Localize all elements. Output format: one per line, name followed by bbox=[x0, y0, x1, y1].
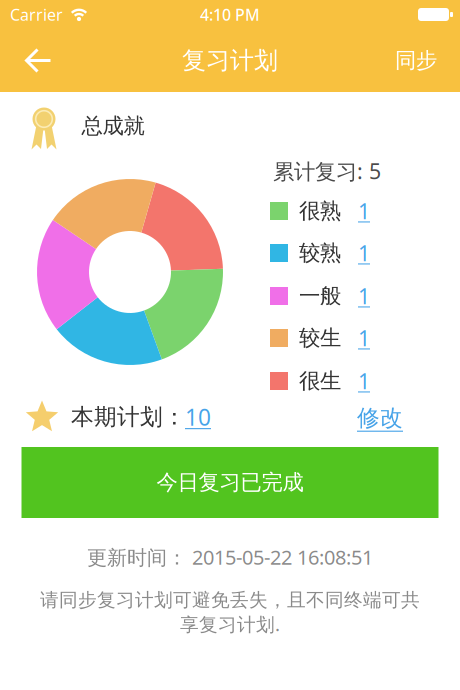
button[interactable]: Back bbox=[25, 45, 53, 75]
staticText: 很熟 bbox=[299, 198, 341, 224]
staticText: 享复习计划. bbox=[180, 612, 280, 636]
staticText: Carrier bbox=[10, 4, 63, 25]
staticText: 本期计划： bbox=[71, 403, 186, 431]
staticText: 4:10 PM bbox=[200, 4, 260, 25]
staticText: 较熟 bbox=[299, 240, 341, 266]
staticText: 10 bbox=[185, 402, 211, 432]
button[interactable]: 1 bbox=[354, 318, 374, 358]
staticText: 1 bbox=[358, 367, 370, 395]
button[interactable]: 1 bbox=[354, 276, 374, 316]
staticText: 1 bbox=[358, 324, 370, 352]
staticText: 修改 bbox=[357, 404, 403, 432]
button[interactable]: 同步 bbox=[395, 47, 437, 74]
button[interactable]: 10 bbox=[185, 397, 211, 437]
button[interactable]: 1 bbox=[354, 191, 374, 231]
staticText: 复习计划 bbox=[182, 46, 278, 75]
staticText: 请同步复习计划可避免丢失，且不同终端可共 bbox=[40, 588, 420, 611]
staticText: 总成就 bbox=[81, 113, 144, 139]
staticText: 较生 bbox=[299, 325, 341, 351]
staticText: 累计复习: 5 bbox=[273, 157, 381, 185]
button[interactable]: 修改 bbox=[357, 398, 403, 438]
staticText: 很生 bbox=[299, 368, 341, 394]
button[interactable]: 1 bbox=[354, 361, 374, 401]
staticText: 一般 bbox=[299, 283, 341, 309]
button[interactable]: 今日复习已完成 bbox=[21, 447, 438, 518]
staticText: 更新时间： 2015-05-22 16:08:51 bbox=[87, 544, 373, 570]
staticText: 今日复习已完成 bbox=[156, 469, 303, 496]
button[interactable]: 1 bbox=[354, 233, 374, 273]
staticText: 1 bbox=[358, 239, 370, 267]
staticText: 1 bbox=[358, 282, 370, 310]
staticText: 同步 bbox=[395, 47, 437, 74]
staticText: 1 bbox=[358, 197, 370, 225]
